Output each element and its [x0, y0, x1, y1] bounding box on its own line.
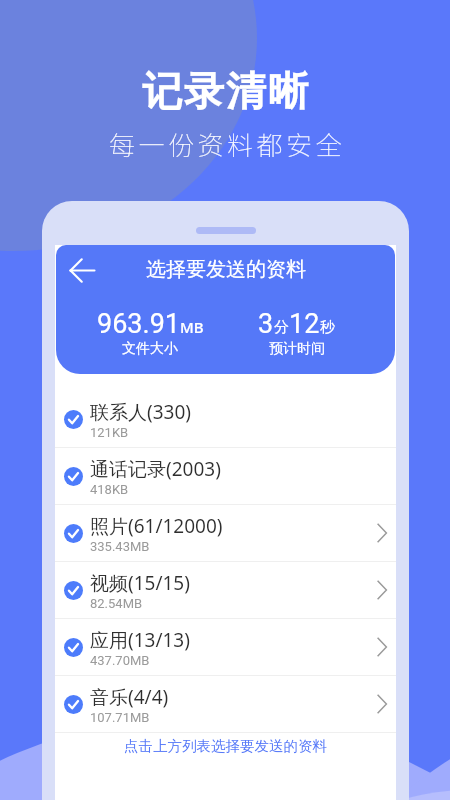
staticText: 418KB [90, 482, 129, 497]
staticText: 联系人(330) [90, 399, 192, 425]
button[interactable]: 应用(13/13) [55, 619, 396, 675]
staticText: 107.71MB [90, 710, 150, 725]
staticText: MB [180, 317, 204, 337]
staticText: 82.54MB [90, 596, 143, 611]
staticText: 应用(13/13) [90, 627, 190, 653]
staticText: 121KB [90, 425, 129, 440]
staticText: 12 [289, 308, 320, 340]
staticText: 点击上方列表选择要发送的资料 [124, 737, 327, 755]
button[interactable]: 视频(15/15) [55, 562, 396, 618]
staticText: 视频(15/15) [90, 570, 190, 596]
staticText: 437.70MB [90, 653, 150, 668]
other: 展开 [377, 523, 387, 543]
other: 展开 [377, 637, 387, 657]
button[interactable]: 音乐(4/4) [55, 676, 396, 732]
staticText: 每一份资料都安全 [109, 125, 346, 163]
button[interactable]: 返回 [67, 255, 98, 286]
button[interactable]: 照片(61/12000) [55, 505, 396, 561]
staticText: 分 [274, 318, 289, 337]
staticText: 照片(61/12000) [90, 513, 223, 539]
staticText: 3 [258, 308, 274, 340]
staticText: 预计时间 [269, 340, 325, 358]
other: 展开 [377, 694, 387, 714]
other: 展开 [377, 580, 387, 600]
button[interactable]: 通话记录(2003) [55, 448, 396, 504]
staticText: 选择要发送的资料 [146, 257, 306, 282]
staticText: 秒 [320, 318, 335, 337]
staticText: 记录清晰 [141, 66, 309, 116]
staticText: 音乐(4/4) [90, 684, 169, 710]
staticText: 335.43MB [90, 539, 150, 554]
staticText: 通话记录(2003) [90, 456, 221, 482]
staticText: 文件大小 [122, 340, 178, 358]
button[interactable]: 联系人(330) [55, 391, 396, 447]
staticText: 963.91 [97, 308, 180, 340]
